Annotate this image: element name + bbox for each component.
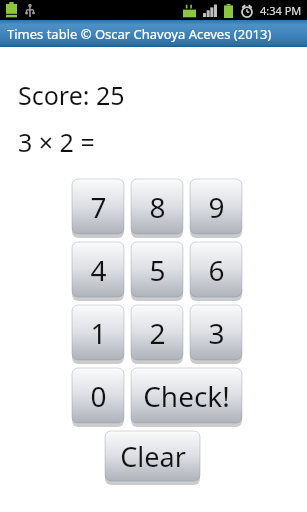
button[interactable]: 6 [190, 242, 242, 299]
button[interactable]: 3 [190, 305, 242, 362]
staticText: 6 [208, 251, 225, 289]
staticText: 7 [90, 188, 107, 226]
button[interactable]: 5 [131, 242, 183, 299]
button[interactable]: 0 [72, 368, 124, 425]
button[interactable]: 2 [131, 305, 183, 362]
button[interactable]: 1 [72, 305, 124, 362]
staticText: Clear [120, 438, 186, 475]
staticText: 5 [149, 251, 166, 289]
staticText: 1 [90, 314, 107, 352]
button[interactable]: Clear [105, 431, 200, 483]
staticText: 2 [149, 314, 166, 352]
staticText: 0 [90, 377, 107, 415]
staticText: 4:34 PM [260, 3, 302, 18]
staticText: 3 [208, 314, 225, 352]
staticText: 3 × 2 = [18, 125, 95, 159]
staticText: 4 [90, 251, 107, 289]
button[interactable]: Check! [131, 368, 242, 425]
staticText: Score: 25 [18, 78, 125, 112]
staticText: Check! [143, 377, 230, 415]
button[interactable]: 9 [190, 179, 242, 236]
staticText: 9 [208, 188, 225, 226]
button[interactable]: 7 [72, 179, 124, 236]
staticText: Times table © Oscar Chavoya Aceves (2013… [7, 25, 272, 43]
button[interactable]: 4 [72, 242, 124, 299]
staticText: 8 [149, 188, 166, 226]
button[interactable]: 8 [131, 179, 183, 236]
